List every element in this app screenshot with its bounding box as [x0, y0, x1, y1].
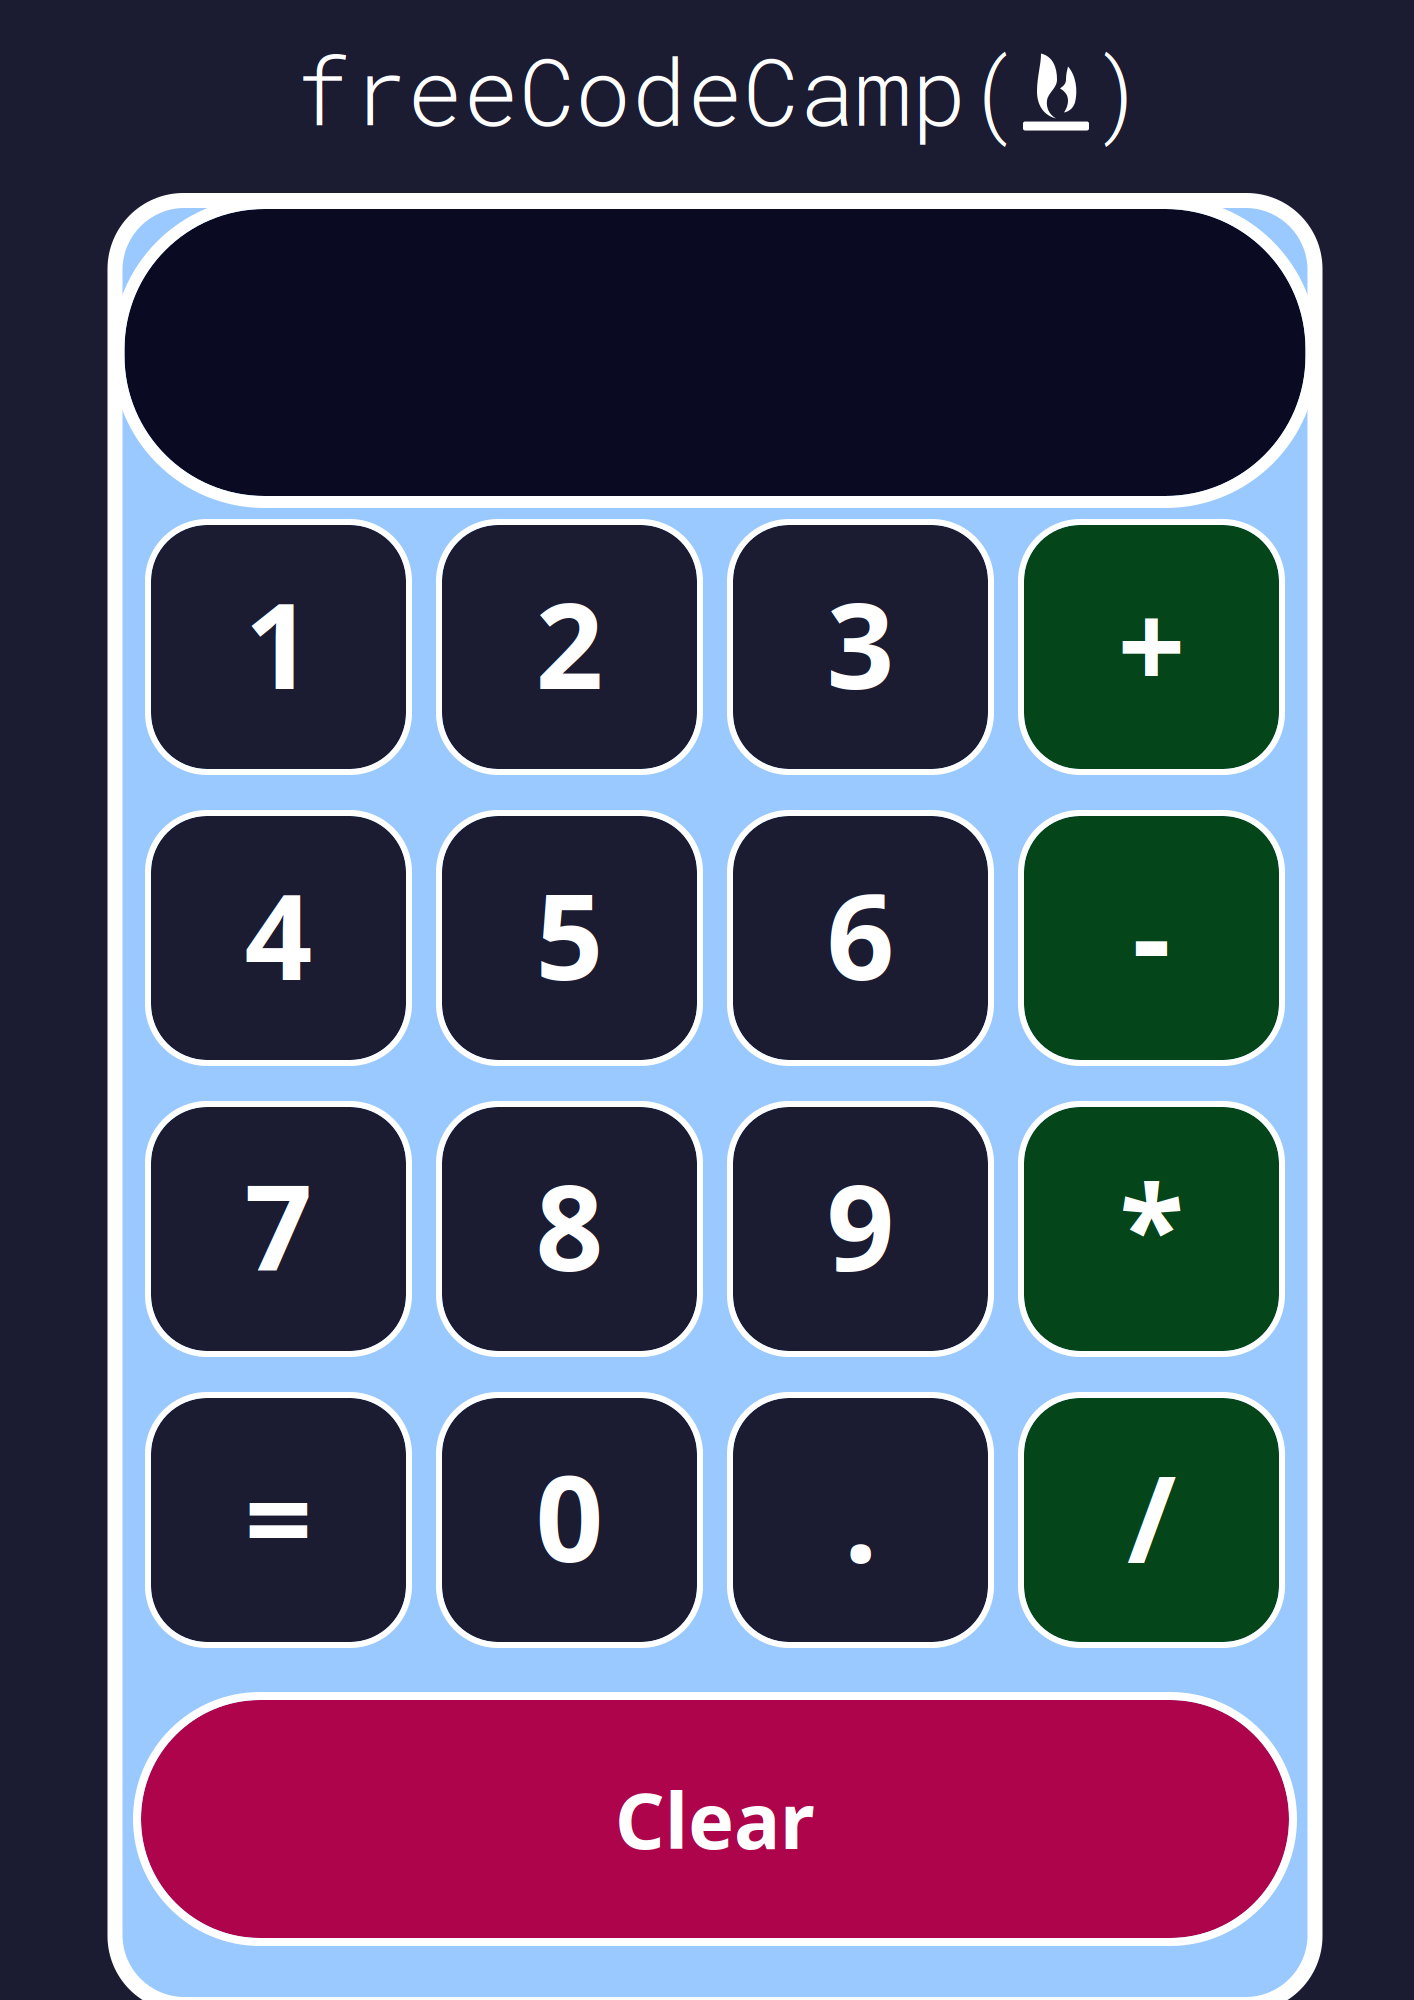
button[interactable]: * [1024, 1107, 1279, 1351]
staticText: = [244, 1437, 312, 1595]
button[interactable]: 3 [733, 525, 988, 769]
button[interactable]: 7 [151, 1107, 406, 1351]
staticText: 9 [826, 1146, 894, 1304]
button[interactable]: 4 [151, 816, 406, 1060]
button[interactable]: / [1024, 1398, 1279, 1642]
staticText: * [1119, 1146, 1183, 1304]
button[interactable]: + [1024, 525, 1279, 769]
button[interactable]: 0 [442, 1398, 697, 1642]
staticText: 5 [535, 855, 603, 1013]
staticText: ) [1089, 28, 1145, 151]
staticText: 3 [826, 564, 894, 722]
staticText: freeCodeCamp( [295, 28, 1023, 151]
staticText: / [1127, 1437, 1176, 1595]
staticText: 1 [244, 564, 312, 722]
button[interactable]: 8 [442, 1107, 697, 1351]
staticText: 6 [826, 855, 894, 1013]
button[interactable]: = [151, 1398, 406, 1642]
staticText: Clear [615, 1768, 815, 1870]
staticText: 0 [535, 1437, 603, 1595]
button[interactable]: 1 [151, 525, 406, 769]
button[interactable]: 2 [442, 525, 697, 769]
staticText: - [1132, 855, 1170, 1013]
staticText: 2 [535, 564, 603, 722]
staticText: 4 [244, 855, 312, 1013]
staticText: 8 [535, 1146, 603, 1304]
button[interactable]: 6 [733, 816, 988, 1060]
button[interactable]: - [1024, 816, 1279, 1060]
button[interactable]: 5 [442, 816, 697, 1060]
staticText: 7 [244, 1146, 312, 1304]
button[interactable]: Clear [141, 1700, 1289, 1938]
button[interactable]: 9 [733, 1107, 988, 1351]
staticText: + [1117, 564, 1185, 722]
button[interactable]: . [733, 1398, 988, 1642]
staticText: . [844, 1437, 877, 1595]
